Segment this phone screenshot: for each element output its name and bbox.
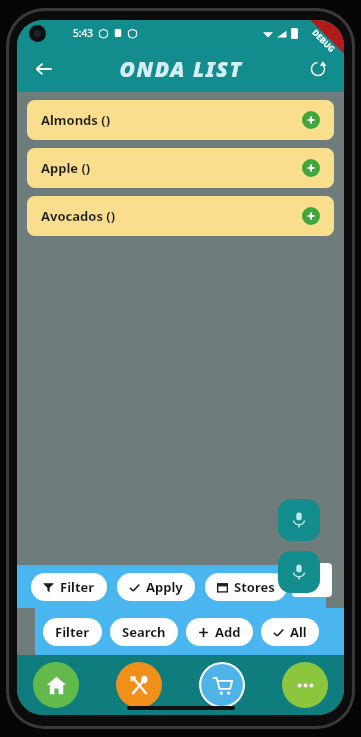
button[interactable]: Add item	[302, 111, 320, 129]
staticText: Avocados ()	[41, 207, 116, 225]
button[interactable]: Voice input	[278, 499, 320, 541]
staticText: Add	[215, 623, 241, 641]
staticText: 5:43	[73, 26, 93, 40]
button[interactable]: Apple ()	[27, 148, 334, 188]
staticText: Apply	[146, 578, 183, 596]
button[interactable]: Back	[27, 52, 61, 86]
staticText: Almonds ()	[41, 111, 111, 129]
button[interactable]: Refresh	[302, 53, 334, 85]
button[interactable]: Add	[198, 618, 241, 646]
button[interactable]: Home	[33, 662, 79, 708]
button[interactable]: Voice input	[278, 551, 320, 593]
button[interactable]: Search	[122, 618, 166, 646]
staticText: DEBUG	[310, 27, 338, 54]
button[interactable]: Add item	[302, 159, 320, 177]
button[interactable]: Filter	[43, 573, 95, 601]
staticText: Apple ()	[41, 159, 91, 177]
staticText: All	[290, 623, 307, 641]
button[interactable]: Filter	[55, 618, 90, 646]
button[interactable]: Cart	[199, 662, 245, 708]
staticText: Search	[122, 623, 166, 641]
staticText: Filter	[60, 578, 95, 596]
button[interactable]: Stores	[217, 573, 275, 601]
staticText: Filter	[55, 623, 90, 641]
staticText: ONDA LIST	[119, 55, 243, 84]
button[interactable]: Add item	[302, 207, 320, 225]
button[interactable]: All	[273, 618, 307, 646]
button[interactable]: Avocados ()	[27, 196, 334, 236]
button[interactable]: More	[282, 662, 328, 708]
button[interactable]: Almonds ()	[27, 100, 334, 140]
button[interactable]: Recipes	[116, 662, 162, 708]
button[interactable]: Apply	[129, 573, 183, 601]
staticText: Stores	[234, 578, 275, 596]
